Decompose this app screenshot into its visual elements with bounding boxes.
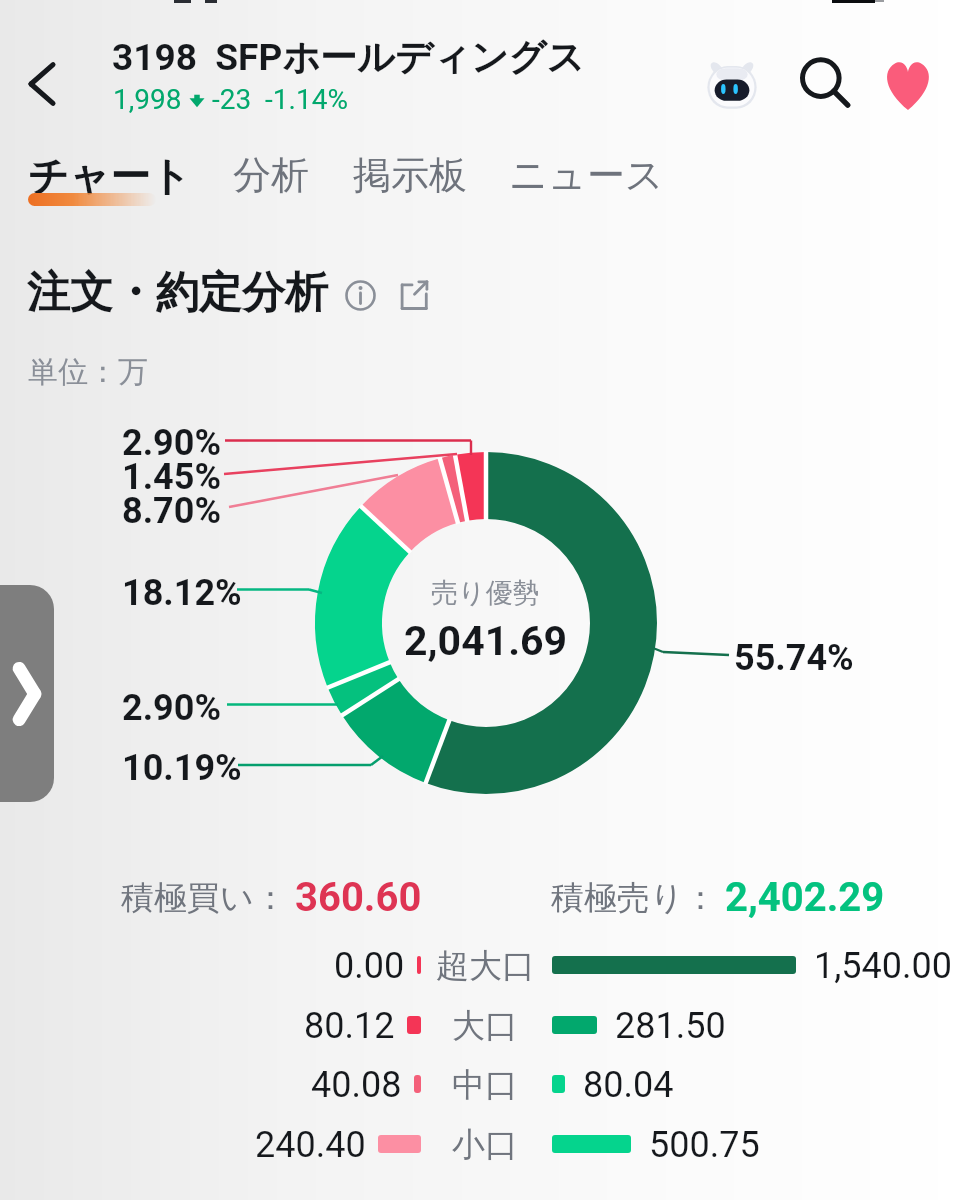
staticText: 中口 — [452, 1064, 518, 1106]
staticText: 2,402.29 — [725, 874, 885, 921]
button[interactable]: Expand side panel — [0, 585, 54, 802]
staticText: 売り優勢 — [431, 576, 540, 610]
staticText: 分析 — [233, 151, 309, 199]
staticText: 0.00 — [334, 945, 405, 987]
staticText: 積極売り： — [551, 877, 717, 919]
staticText: チャート — [28, 151, 191, 201]
staticText: 注文・約定分析 — [27, 266, 328, 320]
staticText: 55.74% — [734, 637, 854, 679]
staticText: 超大口 — [436, 945, 535, 987]
button[interactable]: Back — [2, 44, 82, 124]
button[interactable]: Share — [392, 273, 436, 317]
staticText: 大口 — [452, 1005, 518, 1047]
button[interactable]: Search — [785, 44, 865, 124]
staticText: 1,540.00 — [814, 945, 952, 987]
staticText: 80.04 — [583, 1064, 674, 1106]
staticText: 500.75 — [649, 1124, 760, 1166]
staticText: ニュース — [509, 151, 664, 199]
staticText: 3198 SFPホールディングス — [112, 34, 585, 81]
staticText: 1,998 — [113, 83, 182, 116]
staticText: 8.70% — [122, 490, 222, 532]
staticText: 240.40 — [255, 1124, 366, 1166]
staticText: -23 -1.14% — [212, 83, 348, 116]
staticText: 2.90% — [122, 687, 222, 729]
staticText: 1.45% — [122, 456, 222, 498]
staticText: 掲示板 — [353, 151, 467, 199]
button[interactable]: チャート — [28, 151, 191, 201]
button[interactable]: Info — [338, 273, 382, 317]
staticText: 2,041.69 — [404, 617, 568, 665]
staticText: 単位：万 — [28, 353, 148, 391]
button[interactable]: 掲示板 — [353, 151, 467, 199]
staticText: 40.08 — [311, 1064, 402, 1106]
button[interactable]: ニュース — [509, 151, 664, 199]
staticText: 80.12 — [304, 1005, 395, 1047]
staticText: 積極買い： — [121, 877, 287, 919]
button[interactable]: Favorite — [868, 44, 948, 124]
staticText: 360.60 — [295, 874, 422, 921]
staticText: 281.50 — [615, 1005, 726, 1047]
button[interactable]: 分析 — [233, 151, 309, 199]
button[interactable]: AI assistant — [692, 44, 772, 124]
staticText: 小口 — [452, 1124, 518, 1166]
staticText: 10.19% — [122, 747, 242, 789]
staticText: 18.12% — [122, 572, 242, 614]
staticText: 2.90% — [122, 422, 222, 464]
